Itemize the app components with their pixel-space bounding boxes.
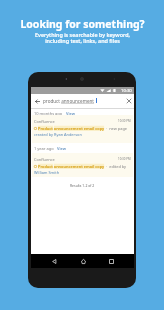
button[interactable]: Home <box>77 255 89 267</box>
button[interactable]: Recent apps <box>105 255 117 267</box>
staticText: Results 1-2 of 2 <box>70 183 95 188</box>
button[interactable]: View <box>66 111 75 116</box>
button[interactable]: Confluence <box>32 153 133 177</box>
staticText: product announcement <box>43 98 95 104</box>
staticText: 10:30 PM <box>118 157 131 161</box>
button[interactable]: Back <box>31 95 134 106</box>
staticText: 10:30 PM <box>118 119 131 123</box>
staticText: Looking for something? <box>20 17 145 31</box>
staticText: William Smith <box>34 170 60 175</box>
staticText: View <box>66 111 75 116</box>
button[interactable]: Back <box>48 255 60 267</box>
staticText: Product announcement email copy · edited… <box>38 164 127 169</box>
staticText: Everything is searchable by keyword, inc… <box>35 31 130 45</box>
staticText: created by Ryan Anderson <box>34 132 82 137</box>
staticText: Product announcement email copy · new pa… <box>38 126 127 131</box>
staticText: 10:30 <box>121 88 132 94</box>
staticText: Confluence <box>34 119 55 124</box>
button[interactable]: View <box>57 146 66 151</box>
button[interactable]: Clear search <box>124 96 133 105</box>
button[interactable]: Back <box>33 97 41 105</box>
staticText: 1 year ago <box>34 146 54 151</box>
staticText: 10 months ago <box>34 111 63 116</box>
button[interactable]: Confluence <box>32 115 133 143</box>
staticText: View <box>57 146 66 151</box>
staticText: Confluence <box>34 157 55 162</box>
